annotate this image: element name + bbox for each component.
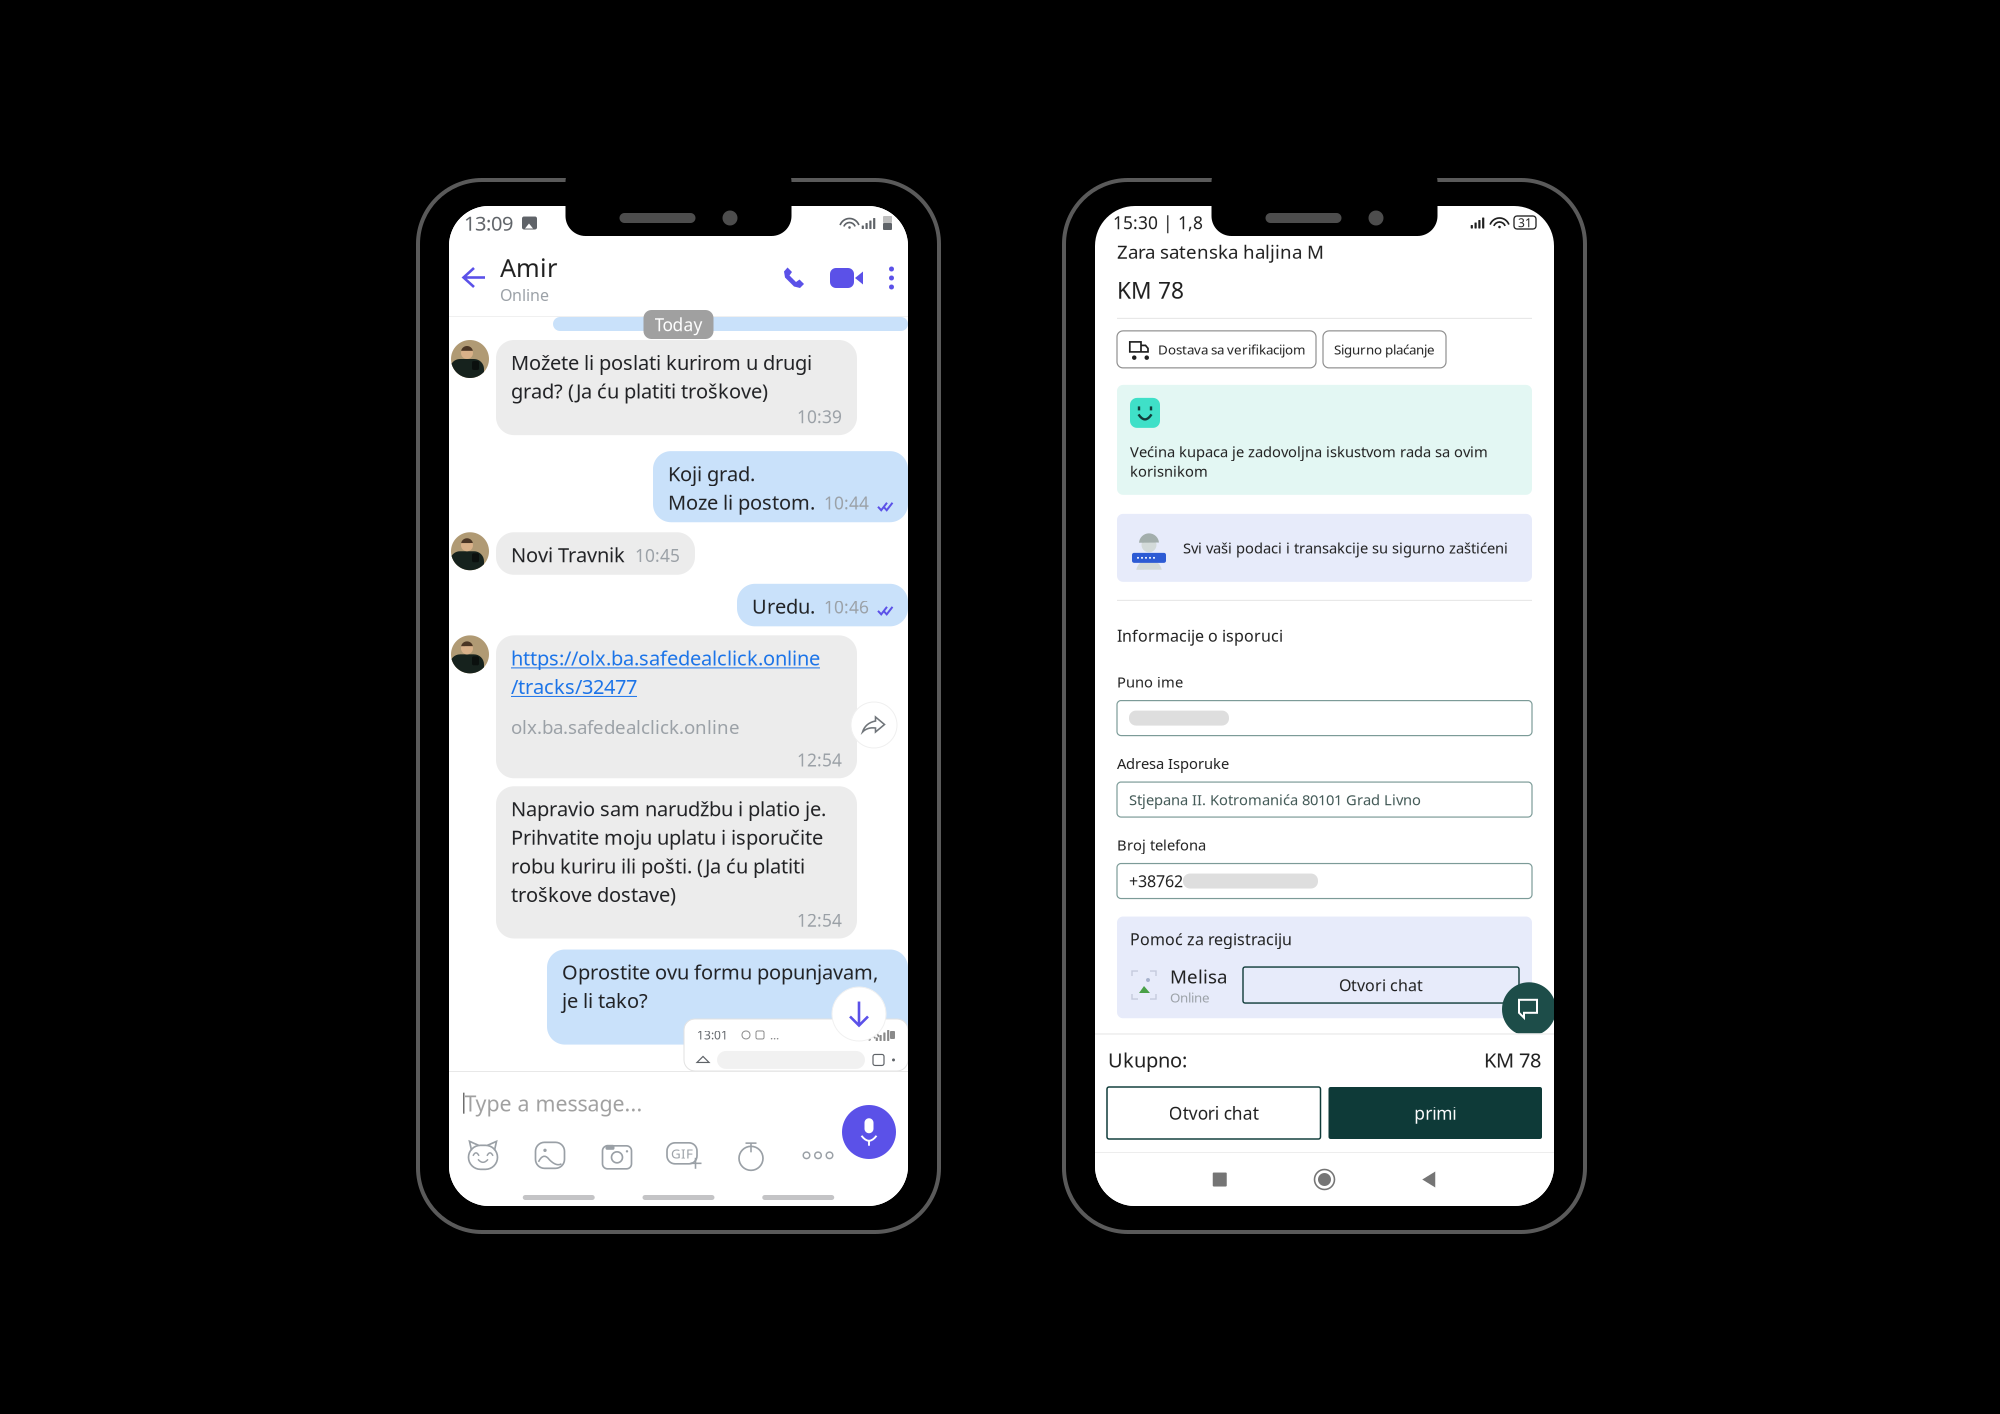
staticText: Otvori chat [1169,1101,1259,1124]
staticText: 31 [1518,214,1532,230]
staticText: korisnikom [1130,461,1208,481]
button[interactable]: Home [1300,1155,1348,1203]
button[interactable]: Attachment [729,1136,773,1174]
staticText: 12:54 [797,908,842,931]
staticText: 10:46 [824,595,869,618]
staticText: Moze li postom. [668,489,815,515]
button[interactable]: Attachment [595,1136,639,1174]
button[interactable]: Dostava sa verifikacijom [1117,331,1316,368]
staticText: Amir [500,251,557,284]
staticText: https://olx.ba.safedealclick.online [511,644,820,671]
staticText: Novi Travnik [511,541,625,568]
staticText: Napravio sam narudžbu i platio je. [511,795,826,822]
staticText: Zara satenska haljina M [1117,239,1324,264]
button[interactable]: Call [771,247,818,308]
staticText: 13:09 [464,210,513,236]
staticText: Koji grad. [668,460,755,487]
staticText: Type a message... [464,1089,642,1117]
staticText: Informacije o isporuci [1117,625,1283,646]
button[interactable]: https://olx.ba.safedealclick.online [511,644,842,771]
staticText: /tracks/32477 [511,673,637,699]
button[interactable]: Video call [818,246,875,310]
staticText: Stjepana II. Kotromanića 80101 Grad Livn… [1129,790,1421,809]
button[interactable]: Otvori chat [1243,967,1519,1003]
staticText: 10:39 [797,405,842,428]
staticText: olx.ba.safedealclick.online [511,714,740,739]
staticText: Pomoć za registraciju [1130,928,1292,950]
button[interactable]: More options [875,246,908,309]
staticText: +38762 [1129,870,1183,892]
button[interactable]: Share [851,702,908,748]
staticText: ... [770,1027,779,1043]
staticText: robu kuriru ili pošti. (Ja ću platiti [511,852,805,879]
staticText: Online [1170,989,1210,1006]
staticText: Možete li poslati kurirom u drugi [511,349,812,376]
staticText: Većina kupaca je zadovoljna iskustvom ra… [1130,442,1488,461]
button[interactable]: Attachment [528,1136,572,1174]
staticText: Online [500,284,549,305]
button[interactable]: Sigurno plaćanje [1323,331,1446,368]
button[interactable]: Attachment [662,1136,706,1174]
staticText: Uredu. [752,593,815,619]
staticText: grad? (Ja ću platiti troškove) [511,378,768,404]
staticText: Puno ime [1117,672,1183,692]
staticText: Sigurno plaćanje [1334,340,1435,358]
staticText: Melisa [1170,964,1227,989]
staticText: 13:01 [697,1027,728,1043]
button[interactable]: Recents [1199,1158,1241,1200]
button[interactable]: Scroll to bottom [832,987,886,1041]
staticText: Oprostite ovu formu popunjavam, [562,958,878,985]
staticText: GIF [671,1144,693,1162]
staticText: 12:54 [797,748,842,771]
staticText: Prihvatite moju uplatu i isporučite [511,824,823,850]
button[interactable]: Back [1408,1157,1450,1201]
staticText: Otvori chat [1339,974,1423,996]
staticText: 10:45 [635,544,680,567]
button[interactable]: Back [449,248,500,308]
staticText: KM 78 [1117,275,1184,305]
staticText: Today [654,313,702,336]
staticText: Svi vaši podaci i transakcije su sigurno… [1183,538,1508,558]
button[interactable]: Otvori chat [1107,1087,1320,1139]
staticText: 10:44 [824,491,869,514]
button[interactable]: Voice message [842,1072,908,1159]
staticText: troškove dostave) [511,881,676,907]
button[interactable]: primi [1328,1087,1542,1139]
button[interactable]: Attachment [461,1136,505,1174]
staticText: 15:30 | 1,8 [1113,211,1203,234]
staticText: KM 78 [1484,1046,1541,1073]
staticText: Ukupno: [1108,1046,1187,1073]
button[interactable]: Open chat [1502,982,1556,1036]
staticText: Adresa Isporuke [1117,754,1229,773]
staticText: Broj telefona [1117,835,1206,854]
staticText: primi [1414,1101,1456,1124]
staticText: je li tako? [562,987,648,1014]
button[interactable]: Attachment [796,1136,840,1174]
staticText: Dostava sa verifikacijom [1158,340,1305,358]
